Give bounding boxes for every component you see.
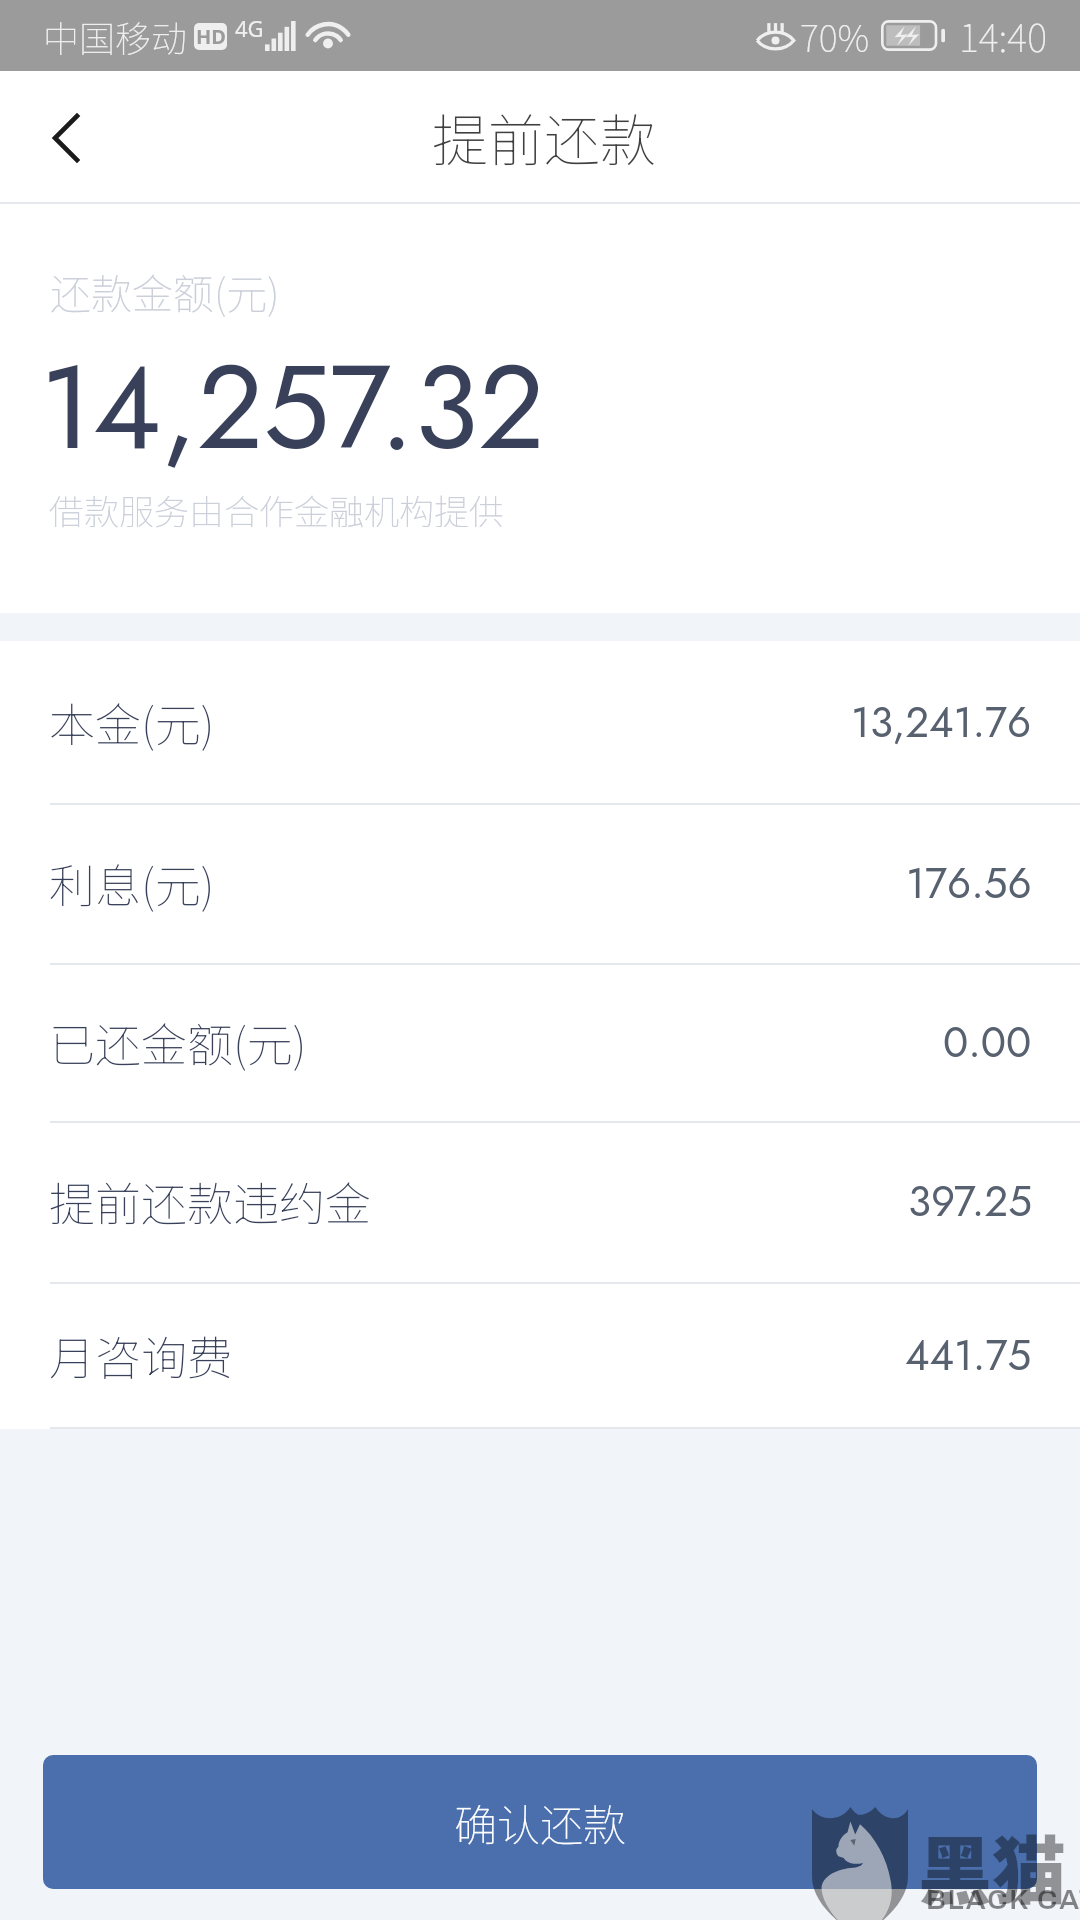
- staticText: 提前还款违约金: [49, 1168, 371, 1235]
- button[interactable]: 提前还款违约金: [0, 1121, 1080, 1282]
- staticText: 441.75: [905, 1325, 1032, 1386]
- staticText: 月咨询费: [49, 1322, 233, 1389]
- staticText: 借款服务由合作金融机构提供: [49, 484, 505, 535]
- button[interactable]: 确认还款: [43, 1755, 1037, 1889]
- staticText: 13,241.76: [851, 692, 1032, 753]
- staticText: 14,257.32: [40, 323, 545, 492]
- staticText: 提前还款: [432, 96, 656, 177]
- staticText: 利息(元): [49, 850, 215, 917]
- staticText: 397.25: [908, 1171, 1032, 1232]
- staticText: 14:40: [959, 8, 1047, 63]
- button[interactable]: 已还金额(元): [0, 963, 1080, 1121]
- staticText: 0.00: [943, 1012, 1032, 1073]
- staticText: 4G: [235, 13, 264, 43]
- button[interactable]: 月咨询费: [0, 1282, 1080, 1429]
- staticText: 中国移动: [43, 10, 188, 62]
- staticText: 还款金额(元): [50, 261, 280, 320]
- staticText: HD: [196, 23, 226, 50]
- staticText: 本金(元): [49, 689, 215, 756]
- staticText: 黑猫: [918, 1812, 1066, 1919]
- staticText: 176.56: [906, 853, 1032, 914]
- staticText: 70%: [800, 10, 870, 62]
- staticText: BLACK CAT: [926, 1884, 1080, 1914]
- button[interactable]: 本金(元): [0, 641, 1080, 803]
- staticText: 确认还款: [454, 1791, 626, 1853]
- staticText: 已还金额(元): [49, 1009, 307, 1076]
- button[interactable]: 利息(元): [0, 803, 1080, 963]
- button[interactable]: Back: [0, 71, 130, 204]
